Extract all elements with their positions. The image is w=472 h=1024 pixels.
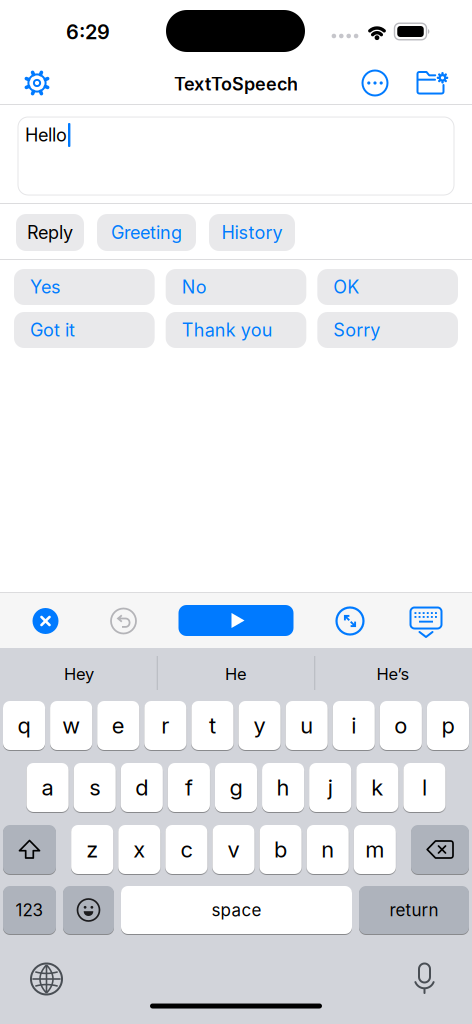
staticText: Hello (25, 124, 67, 146)
staticText: q (17, 712, 30, 739)
staticText: p (441, 712, 454, 739)
button[interactable]: e (97, 701, 139, 750)
staticText: k (371, 774, 383, 801)
staticText: Hey (64, 664, 94, 684)
staticText: t (209, 712, 216, 739)
button[interactable]: Got it (14, 312, 155, 348)
button[interactable]: c (165, 825, 207, 874)
staticText: TextToSpeech (174, 73, 298, 95)
staticText: space (211, 900, 261, 920)
button[interactable]: OK (317, 269, 458, 305)
button[interactable]: Shift (3, 825, 56, 874)
button[interactable]: Next keyboard (31, 963, 62, 994)
button[interactable]: g (215, 763, 257, 812)
staticText: return (389, 900, 438, 920)
button[interactable]: t (191, 701, 233, 750)
staticText: He (225, 664, 247, 684)
button[interactable]: o (380, 701, 422, 750)
staticText: z (86, 836, 98, 863)
button[interactable]: Undo (111, 608, 136, 633)
button[interactable]: Delete (411, 825, 469, 874)
staticText: Yes (30, 276, 61, 298)
staticText: 123 (15, 900, 43, 920)
staticText: j (328, 774, 333, 801)
staticText: w (62, 712, 80, 739)
staticText: 6:29 (66, 20, 110, 44)
staticText: Greeting (111, 222, 182, 243)
button[interactable]: Dictate (412, 962, 437, 993)
staticText: Got it (30, 319, 75, 341)
staticText: Reply (27, 222, 73, 243)
staticText: x (133, 836, 145, 863)
button[interactable]: b (260, 825, 302, 874)
button[interactable]: History (209, 214, 295, 251)
button[interactable]: No (166, 269, 306, 305)
button[interactable]: Expand (336, 607, 363, 634)
button[interactable]: space (121, 886, 352, 934)
staticText: b (274, 836, 287, 863)
button[interactable]: Clear text (32, 608, 58, 634)
button[interactable]: r (144, 701, 186, 750)
button[interactable]: m (354, 825, 396, 874)
staticText: v (227, 836, 239, 863)
staticText: No (182, 276, 207, 298)
button[interactable]: s (74, 763, 116, 812)
staticText: e (112, 712, 125, 739)
button[interactable]: j (309, 763, 351, 812)
button[interactable]: Thank you (166, 312, 306, 348)
button[interactable]: Reply (16, 214, 84, 251)
button[interactable]: More (362, 70, 388, 96)
staticText: d (135, 774, 148, 801)
button[interactable]: Manage files (416, 70, 448, 96)
button[interactable]: i (333, 701, 375, 750)
staticText: l (422, 774, 427, 801)
staticText: r (161, 712, 169, 739)
staticText: h (277, 774, 290, 801)
button[interactable]: l (403, 763, 445, 812)
staticText: y (253, 712, 265, 739)
staticText: i (351, 712, 356, 739)
button[interactable]: p (427, 701, 469, 750)
button[interactable]: f (168, 763, 210, 812)
button[interactable]: q (3, 701, 45, 750)
staticText: a (42, 774, 54, 801)
button[interactable]: Sorry (317, 312, 458, 348)
button[interactable]: y (238, 701, 281, 750)
button[interactable]: h (262, 763, 304, 812)
staticText: m (365, 836, 384, 863)
button[interactable]: z (71, 825, 113, 874)
button[interactable]: k (356, 763, 398, 812)
button[interactable]: Dismiss keyboard (409, 607, 442, 638)
button[interactable]: w (50, 701, 92, 750)
staticText: u (300, 712, 313, 739)
staticText: c (180, 836, 192, 863)
button[interactable]: d (121, 763, 163, 812)
staticText: g (229, 774, 242, 801)
button[interactable]: v (212, 825, 255, 874)
button[interactable]: u (286, 701, 328, 750)
staticText: History (221, 222, 282, 243)
button[interactable]: Hey (0, 648, 157, 700)
button[interactable]: Settings (23, 69, 50, 96)
staticText: OK (333, 276, 359, 298)
button[interactable]: Text input (18, 117, 454, 195)
button[interactable]: x (118, 825, 160, 874)
button[interactable]: Greeting (97, 214, 196, 251)
staticText: n (321, 836, 334, 863)
staticText: He’s (376, 664, 409, 684)
staticText: Sorry (333, 319, 380, 341)
button[interactable]: n (307, 825, 349, 874)
staticText: f (185, 774, 193, 801)
button[interactable]: He’s (314, 648, 471, 700)
staticText: s (89, 774, 100, 801)
button[interactable]: Yes (14, 269, 155, 305)
button[interactable]: 123 (3, 886, 56, 934)
staticText: o (394, 712, 407, 739)
staticText: Thank you (182, 319, 273, 341)
button[interactable]: return (359, 886, 469, 934)
button[interactable]: a (26, 763, 69, 812)
button[interactable]: He (157, 648, 314, 700)
button[interactable]: Emoji (63, 886, 114, 934)
button[interactable]: Speak (178, 605, 293, 636)
